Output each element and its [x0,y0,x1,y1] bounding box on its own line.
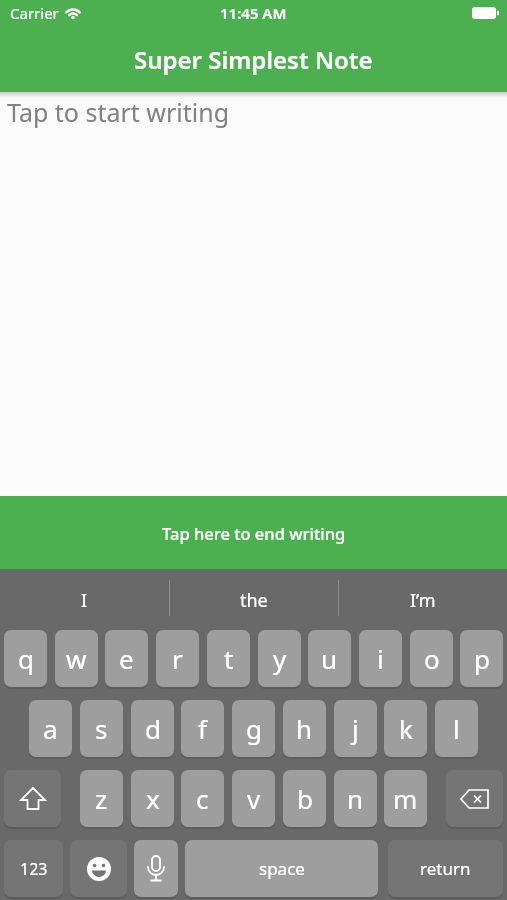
staticText: l [453,711,460,746]
staticText: g [246,711,262,746]
staticText: Carrier [10,3,59,23]
button[interactable]: h [283,700,326,757]
staticText: d [145,711,161,746]
staticText: Tap to start writing [7,95,230,129]
button[interactable]: k [384,700,427,757]
button[interactable]: e [105,630,148,687]
button[interactable]: g [232,700,275,757]
button[interactable]: v [232,770,275,827]
button[interactable]: return [388,840,503,897]
button[interactable]: r [156,630,199,687]
button[interactable]: u [308,630,351,687]
staticText: t [224,641,234,676]
staticText: w [66,641,87,676]
staticText: i [377,641,384,676]
button[interactable]: c [181,770,224,827]
staticText: y [273,641,287,676]
staticText: space [259,857,305,880]
staticText: a [43,711,58,746]
staticText: x [146,781,160,816]
staticText: q [18,641,34,676]
staticText: 123 [20,858,48,880]
button[interactable]: d [131,700,174,757]
staticText: k [399,711,413,746]
button[interactable]: Tap to start writing [0,92,507,496]
button[interactable]: p [460,630,503,687]
staticText: e [119,641,134,676]
staticText: Tap here to end writing [162,522,346,544]
staticText: o [424,641,440,676]
button[interactable] [70,840,127,897]
button[interactable] [134,840,178,897]
staticText: u [321,641,338,676]
button[interactable]: I [0,571,169,629]
button[interactable]: a [29,700,72,757]
staticText: c [196,781,209,816]
staticText: j [352,711,359,746]
button[interactable]: l [435,700,478,757]
staticText: the [240,588,268,613]
button[interactable]: Tap here to end writing [0,496,507,569]
staticText: v [247,781,261,816]
button[interactable]: w [55,630,98,687]
button[interactable]: 123 [4,840,63,897]
button[interactable]: i [359,630,402,687]
staticText: b [297,781,313,816]
staticText: z [95,781,108,816]
staticText: Super Simplest Note [134,43,373,76]
button[interactable]: b [283,770,326,827]
button[interactable]: t [207,630,250,687]
button[interactable]: f [181,700,224,757]
button[interactable]: space [185,840,378,897]
button[interactable]: j [334,700,377,757]
staticText: f [198,711,207,746]
staticText: n [347,781,364,816]
button[interactable]: the [169,571,338,629]
button[interactable]: q [4,630,47,687]
staticText: s [95,711,108,746]
button[interactable] [4,770,61,827]
button[interactable]: y [258,630,301,687]
staticText: I’m [410,588,436,613]
staticText: h [296,711,313,746]
staticText: r [172,641,183,676]
button[interactable]: s [80,700,123,757]
button[interactable]: I’m [338,571,507,629]
button[interactable]: n [334,770,377,827]
staticText: 11:45 AM [220,3,287,23]
button[interactable]: m [384,770,427,827]
button[interactable]: x [131,770,174,827]
staticText: m [393,781,418,816]
staticText: I [81,588,88,613]
staticText: return [420,857,471,880]
button[interactable]: z [80,770,123,827]
staticText: p [474,641,490,676]
button[interactable] [446,770,503,827]
button[interactable]: o [410,630,453,687]
